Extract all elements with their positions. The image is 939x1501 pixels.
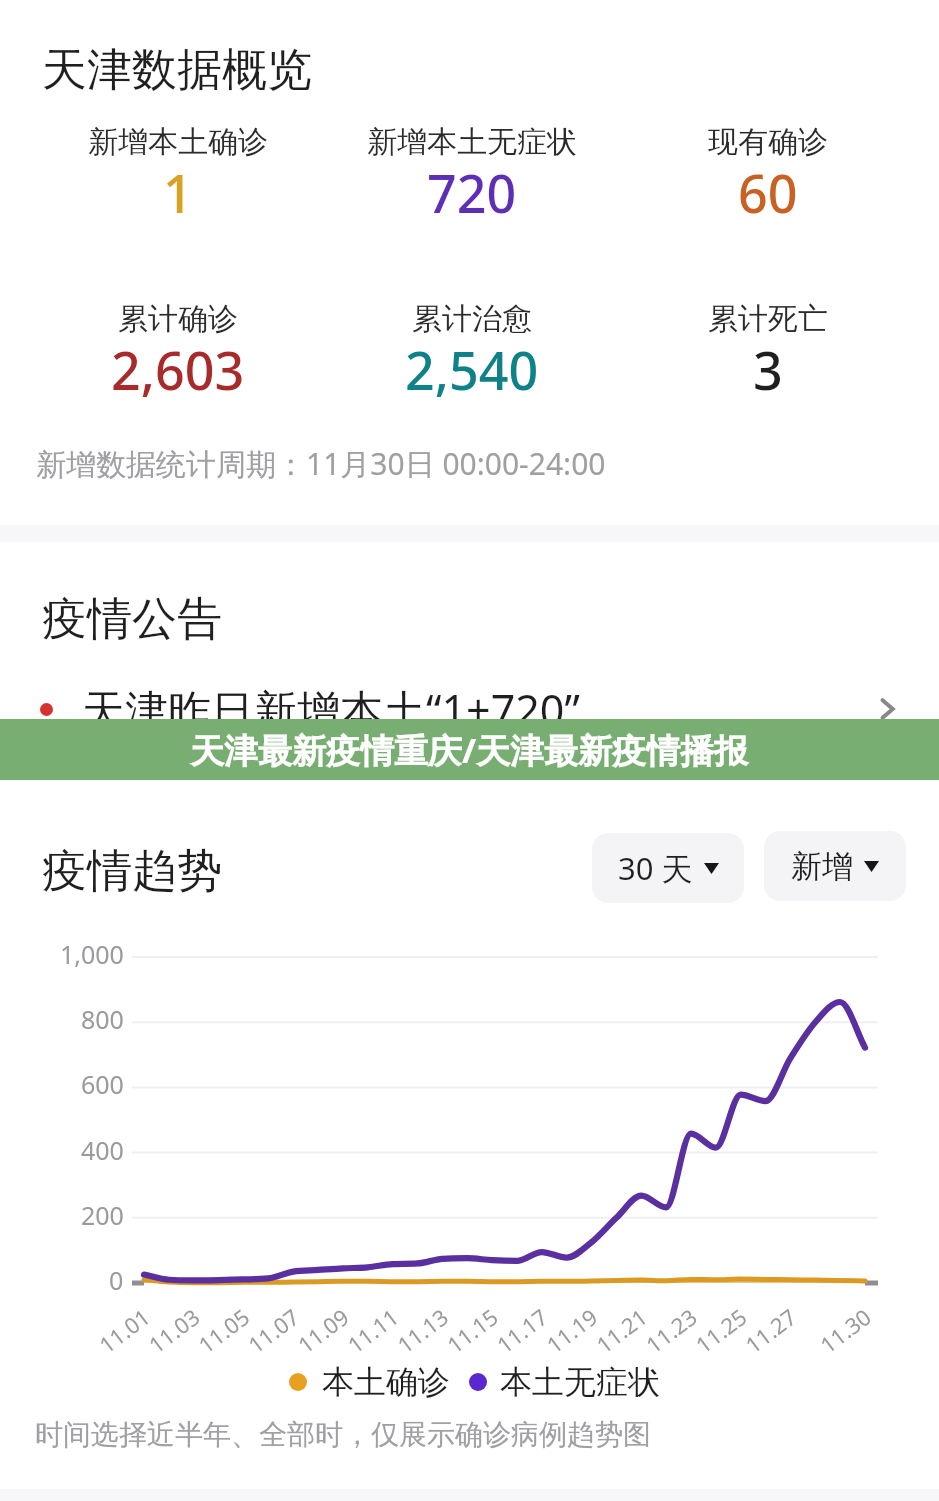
staticText: 720: [427, 157, 517, 228]
other: 查看详情: [871, 692, 905, 726]
staticText: 2,540: [405, 334, 539, 405]
staticText: 2,603: [111, 334, 245, 405]
staticText: 新增本土确诊: [88, 123, 268, 161]
staticText: 新增本土无症状: [367, 123, 577, 161]
button[interactable]: 30 天: [592, 833, 744, 903]
staticText: 3: [753, 334, 783, 405]
staticText: 本土无症状: [500, 1362, 660, 1402]
staticText: 60: [738, 157, 798, 228]
staticText: 天津最新疫情重庆/天津最新疫情播报: [190, 727, 749, 773]
staticText: 本土确诊: [322, 1362, 450, 1402]
staticText: 新增: [791, 847, 853, 886]
staticText: 时间选择近半年、全部时，仅展示确诊病例趋势图: [35, 1417, 651, 1452]
button[interactable]: 新增: [764, 831, 906, 901]
staticText: 疫情趋势: [42, 843, 222, 900]
staticText: 天津数据概览: [42, 42, 312, 99]
staticText: 30 天: [618, 847, 693, 889]
staticText: 天津昨日新增本土“1+720”: [82, 680, 580, 739]
staticText: 新增数据统计周期：11月30日 00:00-24:00: [36, 443, 606, 484]
staticText: 累计治愈: [412, 300, 532, 338]
staticText: 现有确诊: [708, 123, 828, 161]
staticText: 1: [163, 157, 193, 228]
staticText: 累计死亡: [708, 300, 828, 338]
staticText: 疫情公告: [42, 591, 222, 648]
staticText: 累计确诊: [118, 300, 238, 338]
button[interactable]: 天津昨日新增本土“1+720”: [0, 671, 939, 747]
